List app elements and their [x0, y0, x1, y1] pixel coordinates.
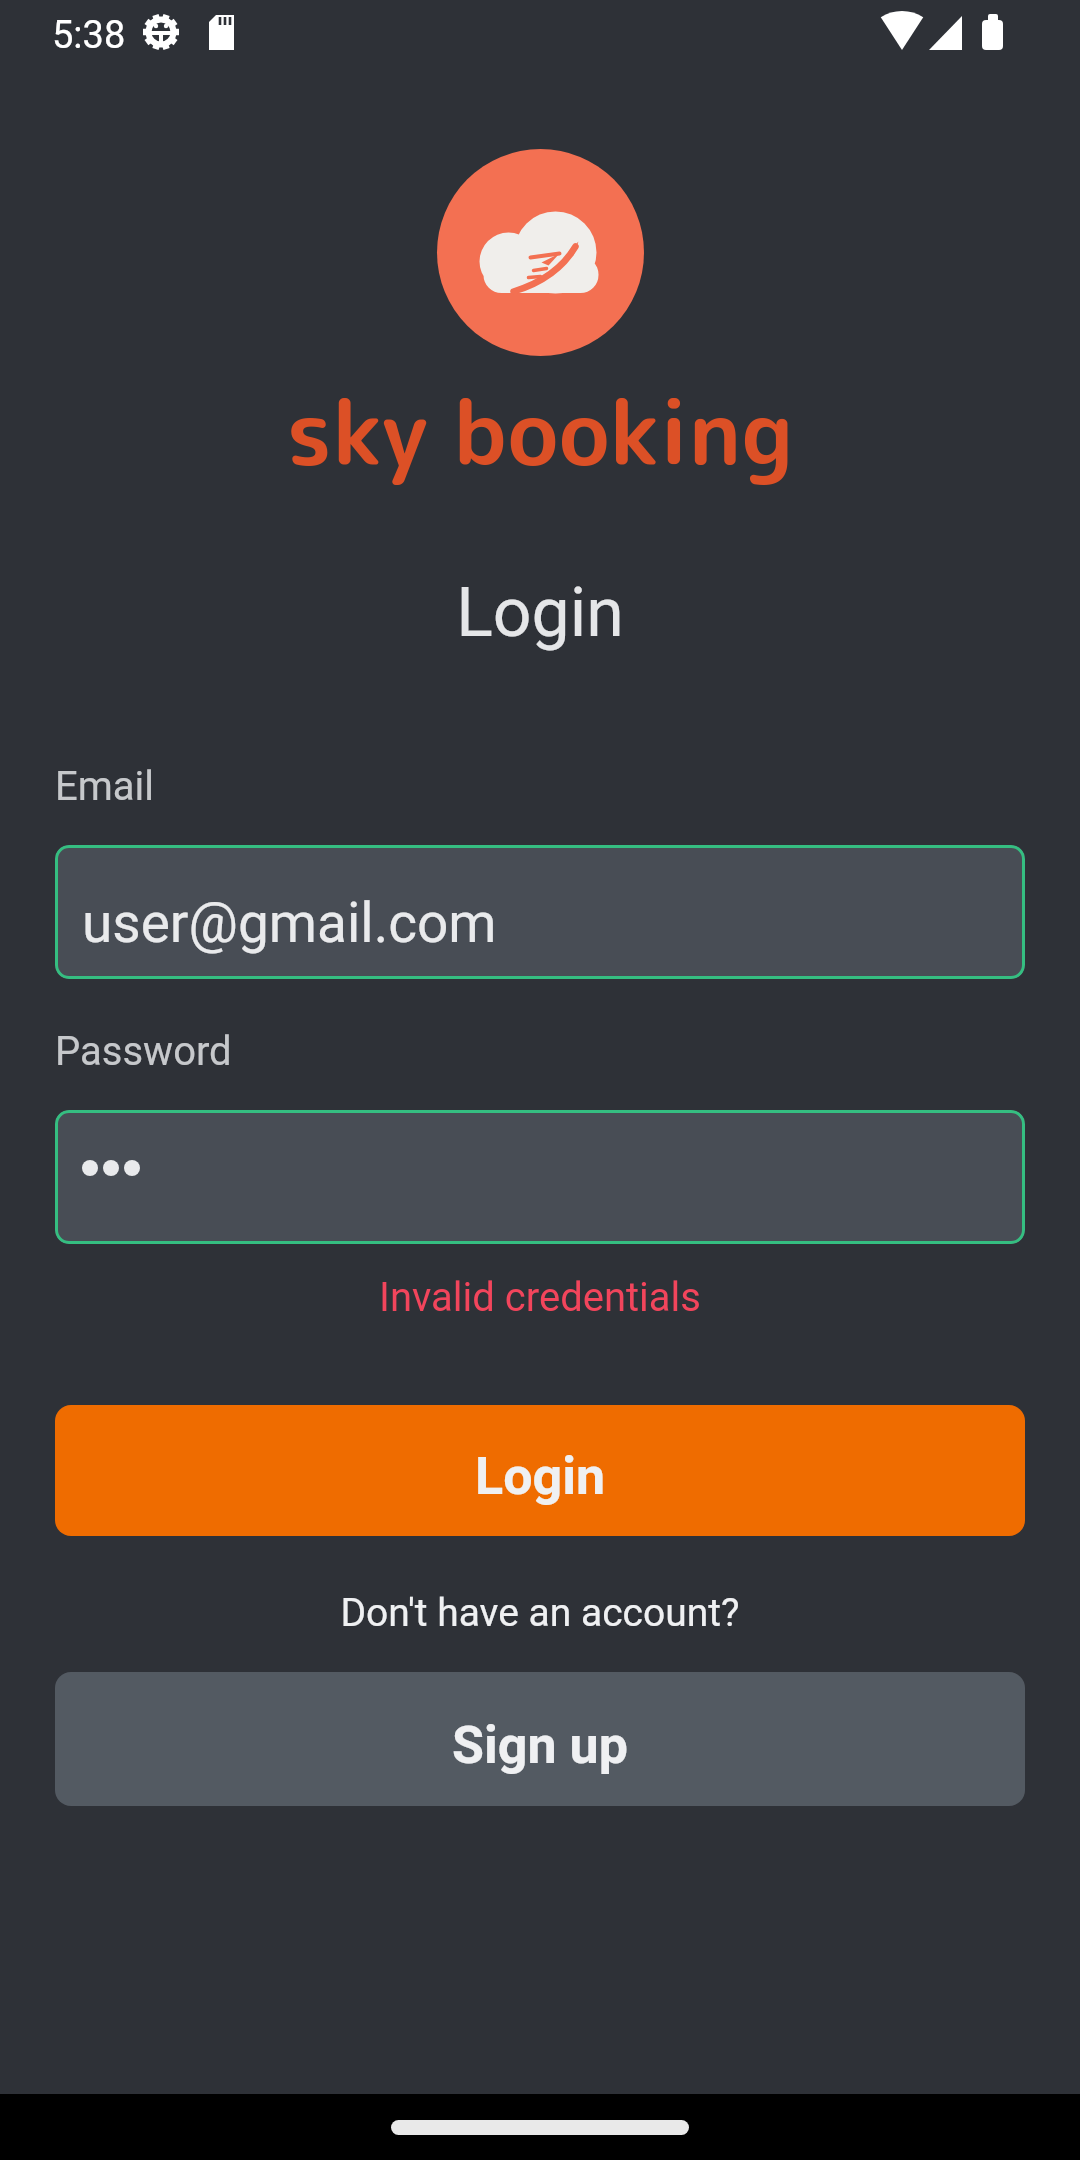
staticText: Email — [55, 763, 155, 810]
staticText: Sign up — [452, 1715, 628, 1776]
staticText: Don't have an account? — [0, 1590, 1080, 1636]
button[interactable]: Login — [55, 1405, 1025, 1536]
staticText: Login — [0, 573, 1080, 653]
button[interactable]: Sign up — [55, 1672, 1025, 1806]
button[interactable] — [55, 1110, 1025, 1244]
staticText: Password — [55, 1028, 232, 1075]
staticText: 5:38 — [52, 13, 126, 58]
staticText: Invalid credentials — [0, 1274, 1080, 1321]
button[interactable] — [55, 845, 1025, 979]
staticText: Login — [475, 1446, 606, 1507]
staticText: sky booking — [0, 370, 1080, 493]
staticText: user@gmail.com — [82, 891, 497, 955]
